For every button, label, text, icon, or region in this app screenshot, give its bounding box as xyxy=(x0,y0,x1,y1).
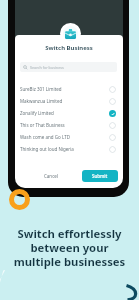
staticText: This or That Business xyxy=(20,122,65,128)
staticText: SureBiz 301 Limited xyxy=(20,86,62,92)
staticText: Cancel xyxy=(44,173,59,179)
staticText: Makwanzua Limited xyxy=(20,98,63,104)
button[interactable]: Submit xyxy=(82,170,118,182)
staticText: Wash come and Go LTD xyxy=(20,134,70,140)
button[interactable]: This or That Business xyxy=(15,119,123,131)
staticText: Switch Business xyxy=(15,44,123,52)
button[interactable]: Zonalify Limited xyxy=(15,107,123,119)
button[interactable]: Thinking out loud Nigeria xyxy=(15,143,123,155)
button[interactable]: Wash come and Go LTD xyxy=(15,131,123,143)
button[interactable]: Cancel xyxy=(20,170,82,182)
button[interactable]: Search for business xyxy=(20,62,117,72)
staticText: Submit xyxy=(92,173,108,179)
button[interactable]: SureBiz 301 Limited xyxy=(15,83,123,95)
staticText: Thinking out loud Nigeria xyxy=(20,146,74,152)
button[interactable]: Makwanzua Limited xyxy=(15,95,123,107)
staticText: Search for business xyxy=(30,65,64,70)
staticText: Zonalify Limited xyxy=(20,110,54,116)
staticText: Switch effortlessly between your multipl… xyxy=(0,226,139,269)
